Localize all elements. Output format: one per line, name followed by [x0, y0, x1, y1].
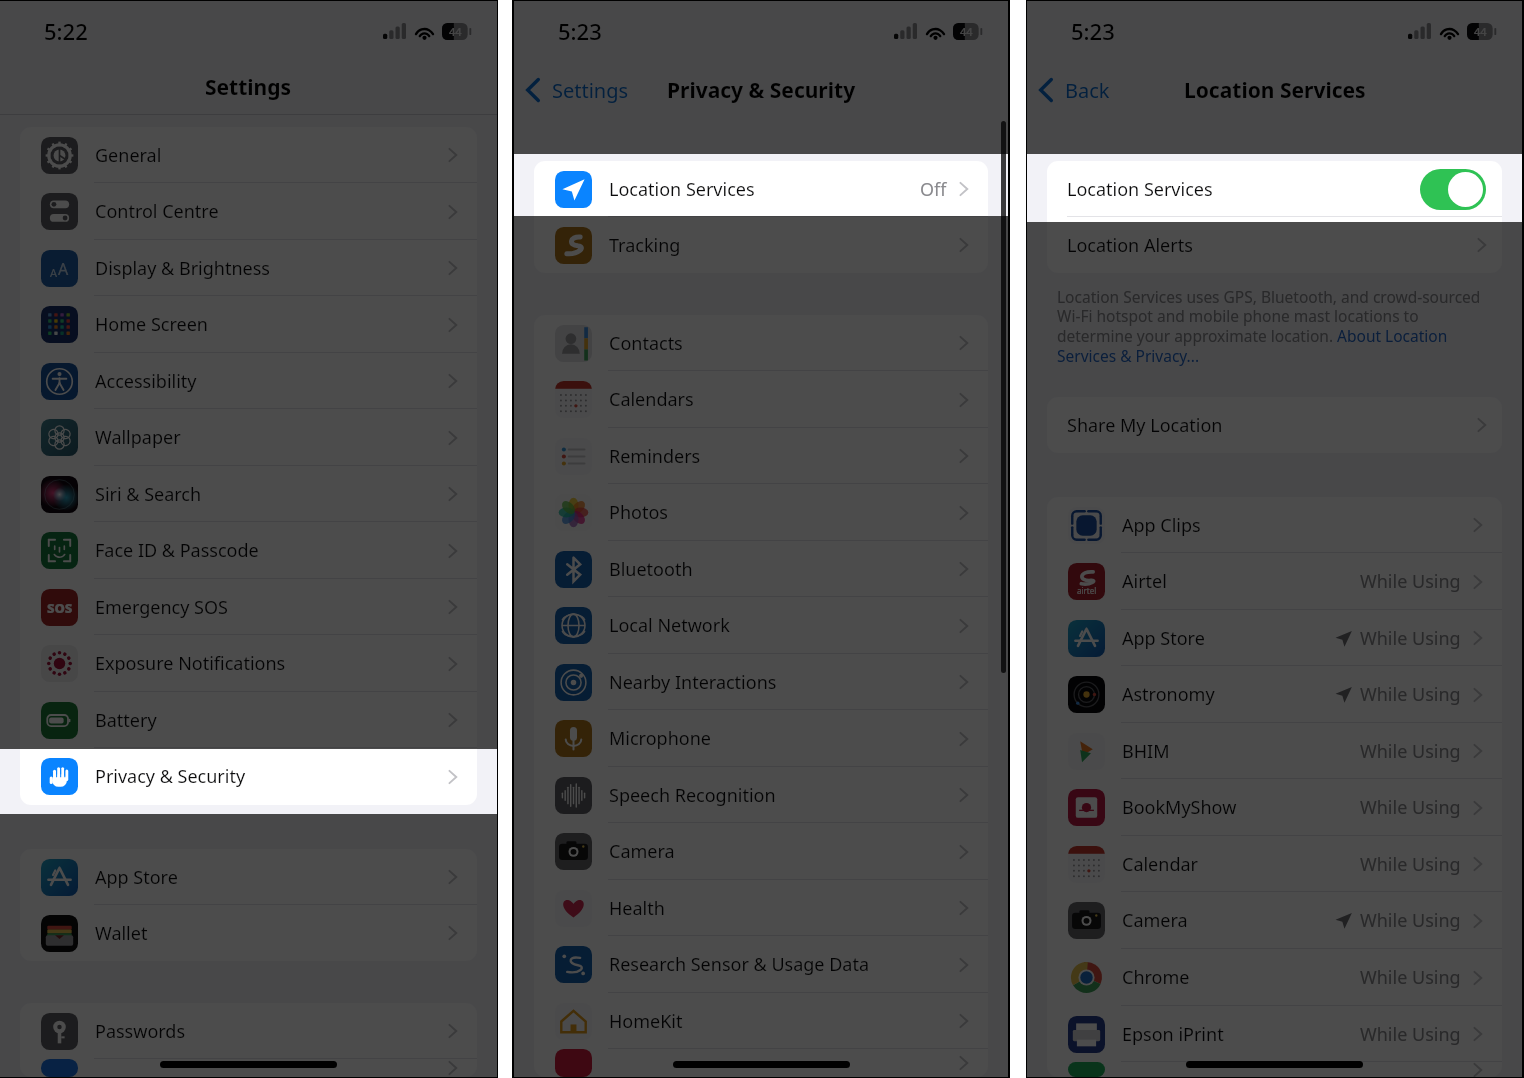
staticText: Tracking: [609, 233, 681, 258]
button[interactable]: General: [20, 127, 477, 183]
button[interactable]: BHIM: [1047, 723, 1502, 779]
staticText: Nearby Interactions: [609, 670, 777, 695]
staticText: Settings: [205, 73, 292, 102]
button[interactable]: Calendars: [534, 371, 988, 428]
staticText: 5:23: [558, 16, 602, 46]
button[interactable]: Privacy & Security: [20, 748, 477, 805]
staticText: Bluetooth: [609, 557, 693, 582]
staticText: While Using: [1360, 965, 1461, 990]
staticText: Share My Location: [1067, 413, 1223, 438]
button[interactable]: Control Centre: [20, 183, 477, 240]
button[interactable]: Accessibility: [20, 353, 477, 409]
button[interactable]: [1047, 1062, 1502, 1077]
button[interactable]: Wallet: [20, 905, 477, 961]
staticText: Wallet: [95, 921, 148, 946]
button[interactable]: App Store: [1047, 610, 1502, 666]
button[interactable]: Calendar: [1047, 836, 1502, 892]
staticText: BookMyShow: [1122, 795, 1237, 820]
button[interactable]: Bluetooth: [534, 541, 988, 597]
staticText: Photos: [609, 500, 668, 525]
staticText: Exposure Notifications: [95, 651, 286, 676]
staticText: While Using: [1360, 1022, 1461, 1047]
staticText: Airtel: [1122, 569, 1167, 594]
staticText: While Using: [1360, 795, 1461, 820]
button[interactable]: Exposure Notifications: [20, 635, 477, 692]
button[interactable]: App Store: [20, 849, 477, 905]
button[interactable]: Camera: [1047, 892, 1502, 949]
button[interactable]: Location Services: [534, 161, 988, 217]
button[interactable]: Photos: [534, 484, 988, 541]
button[interactable]: Home Screen: [20, 296, 477, 353]
button[interactable]: Nearby Interactions: [534, 654, 988, 710]
staticText: Location Alerts: [1067, 233, 1193, 258]
button[interactable]: Face ID & Passcode: [20, 522, 477, 579]
staticText: While Using: [1360, 908, 1461, 933]
button[interactable]: Epson iPrint: [1047, 1006, 1502, 1062]
staticText: Wallpaper: [95, 425, 181, 450]
button[interactable]: App Clips: [1047, 497, 1502, 553]
staticText: BHIM: [1122, 739, 1170, 764]
staticText: Home Screen: [95, 312, 208, 337]
staticText: Display & Brightness: [95, 256, 270, 281]
button[interactable]: Siri & Search: [20, 466, 477, 522]
button[interactable]: Astronomy: [1047, 666, 1502, 723]
button[interactable]: HomeKit: [534, 993, 988, 1049]
staticText: Calendar: [1122, 852, 1198, 877]
staticText: Control Centre: [95, 199, 219, 224]
staticText: Emergency SOS: [95, 595, 228, 620]
staticText: Astronomy: [1122, 682, 1215, 707]
button[interactable]: Wallpaper: [20, 409, 477, 466]
staticText: 44: [449, 24, 462, 39]
button[interactable]: airtel: [1047, 553, 1502, 610]
button[interactable]: Location Alerts: [1047, 217, 1502, 273]
staticText: Location Services: [1067, 177, 1213, 202]
staticText: Camera: [609, 839, 675, 864]
staticText: Health: [609, 896, 665, 921]
staticText: Contacts: [609, 331, 683, 356]
button[interactable]: Settings: [526, 67, 629, 113]
button[interactable]: Share My Location: [1047, 397, 1502, 453]
button[interactable]: Microphone: [534, 710, 988, 767]
button[interactable]: Reminders: [534, 428, 988, 484]
staticText: 5:23: [1071, 16, 1115, 46]
staticText: Local Network: [609, 613, 730, 638]
button[interactable]: [534, 1049, 988, 1077]
button[interactable]: A: [20, 240, 477, 296]
staticText: Location Services uses GPS, Bluetooth, a…: [1057, 286, 1498, 367]
button[interactable]: Speech Recognition: [534, 767, 988, 823]
staticText: App Store: [1122, 626, 1205, 651]
button[interactable]: Passwords: [20, 1003, 477, 1059]
staticText: Location Services: [609, 177, 755, 202]
button[interactable]: Battery: [20, 692, 477, 748]
button[interactable]: Location Services toggle: [1420, 169, 1486, 210]
button[interactable]: Chrome: [1047, 949, 1502, 1006]
staticText: Privacy & Security: [667, 76, 856, 105]
button[interactable]: BookMyShow: [1047, 779, 1502, 836]
button[interactable]: Location Services: [1047, 161, 1502, 217]
staticText: While Using: [1360, 626, 1461, 651]
staticText: A: [50, 265, 58, 280]
button[interactable]: [20, 1059, 477, 1077]
button[interactable]: Contacts: [534, 315, 988, 371]
staticText: Passwords: [95, 1019, 186, 1044]
button[interactable]: Tracking: [534, 217, 988, 273]
staticText: Speech Recognition: [609, 783, 776, 808]
staticText: Battery: [95, 708, 157, 733]
staticText: While Using: [1360, 739, 1461, 764]
staticText: 44: [960, 24, 973, 39]
staticText: Calendars: [609, 387, 694, 412]
button[interactable]: SOS: [20, 579, 477, 635]
button[interactable]: Research Sensor & Usage Data: [534, 936, 988, 993]
staticText: While Using: [1360, 852, 1461, 877]
button[interactable]: Local Network: [534, 597, 988, 654]
button[interactable]: Camera: [534, 823, 988, 880]
staticText: Location Services: [1184, 76, 1366, 105]
staticText: Camera: [1122, 908, 1188, 933]
button[interactable]: Health: [534, 880, 988, 936]
staticText: Back: [1065, 77, 1110, 104]
button[interactable]: Back: [1039, 67, 1110, 113]
staticText: General: [95, 143, 162, 168]
staticText: While Using: [1360, 569, 1461, 594]
staticText: airtel: [1077, 585, 1097, 596]
staticText: App Store: [95, 865, 178, 890]
